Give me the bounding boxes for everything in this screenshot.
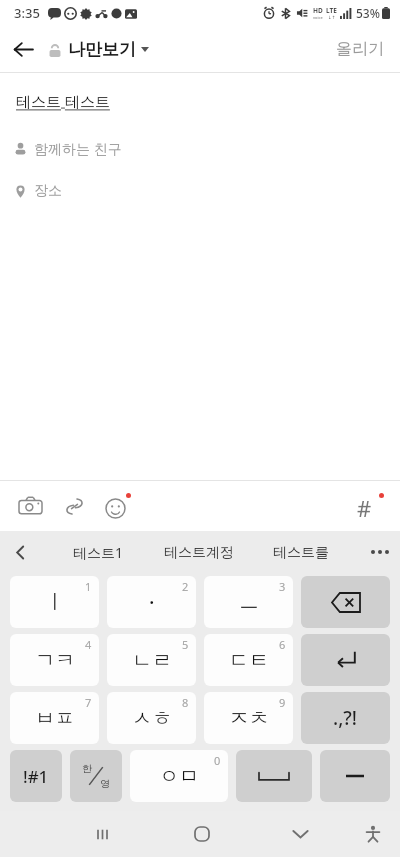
button[interactable]: ㅣ <box>10 576 99 628</box>
button[interactable]: Accessibility <box>350 811 396 857</box>
staticText: 함께하는 친구 <box>34 139 122 158</box>
button[interactable]: Dash <box>320 750 390 802</box>
staticText: 9 <box>279 695 286 710</box>
staticText: voice <box>313 15 323 20</box>
button[interactable]: Attach link <box>52 484 96 528</box>
staticText: ㅇㅁ <box>159 764 199 789</box>
staticText: ㄱㅋ <box>35 648 75 673</box>
button[interactable]: Hashtag <box>348 484 392 528</box>
button[interactable]: ㄱㅋ <box>10 634 99 686</box>
staticText: 0 <box>214 753 221 768</box>
button[interactable]: ㅂㅍ <box>10 692 99 744</box>
staticText: 테스트 테스트 <box>16 91 110 111</box>
button[interactable]: 함께하는 친구 <box>0 133 400 164</box>
button[interactable]: Backspace <box>301 576 390 628</box>
button[interactable]: Camera <box>8 484 52 528</box>
button[interactable]: Emoji <box>96 484 140 528</box>
staticText: 올리기 <box>336 39 384 59</box>
button[interactable]: Home <box>152 811 251 857</box>
staticText: .,?! <box>333 705 358 731</box>
staticText: 1 <box>85 579 92 594</box>
button[interactable]: Recents <box>53 811 152 857</box>
staticText: !#1 <box>23 765 49 788</box>
button[interactable]: 테스트를 <box>267 536 335 570</box>
staticText: 테스트계정 <box>164 544 234 562</box>
staticText: 3 <box>279 579 286 594</box>
button[interactable]: Hide keyboard <box>251 811 350 857</box>
button[interactable]: 장소 <box>0 176 400 206</box>
button[interactable]: 테스트1 <box>67 535 130 570</box>
button[interactable]: Back <box>0 26 46 72</box>
staticText: 6 <box>279 637 286 652</box>
button[interactable]: Enter <box>301 634 390 686</box>
button[interactable]: 나만보기 <box>46 33 151 66</box>
button[interactable]: More options <box>360 532 400 572</box>
staticText: 5 <box>182 637 189 652</box>
button[interactable]: ㅇㅁ <box>130 750 228 802</box>
staticText: 4 <box>85 637 92 652</box>
staticText: ㅈㅊ <box>229 706 269 731</box>
button[interactable]: · <box>107 576 196 628</box>
button[interactable]: Language <box>70 750 122 802</box>
staticText: ㅂㅍ <box>35 706 75 731</box>
button[interactable]: ㅅㅎ <box>107 692 196 744</box>
staticText: ㅡ <box>239 590 259 615</box>
staticText: 나만보기 <box>68 39 136 60</box>
button[interactable]: ㄴㄹ <box>107 634 196 686</box>
staticText: 테스트1 <box>73 543 124 562</box>
button[interactable]: ㅈㅊ <box>204 692 293 744</box>
staticText: 한 <box>82 762 92 775</box>
button[interactable]: Symbols <box>10 750 62 802</box>
staticText: ㄷㅌ <box>229 648 269 673</box>
staticText: 8 <box>182 695 189 710</box>
button[interactable]: Space <box>236 750 312 802</box>
button[interactable]: Previous suggestions <box>0 532 40 572</box>
button[interactable]: Punctuation <box>301 692 390 744</box>
staticText: 2 <box>182 579 189 594</box>
button[interactable]: 테스트계정 <box>158 536 240 570</box>
staticText: LTE <box>326 6 337 15</box>
button[interactable]: ㅡ <box>204 576 293 628</box>
staticText: HD <box>313 6 323 15</box>
staticText: 장소 <box>34 182 62 200</box>
staticText: · <box>149 589 155 616</box>
staticText: ㅅㅎ <box>132 706 172 731</box>
button[interactable]: ㄷㅌ <box>204 634 293 686</box>
staticText: # <box>357 493 372 520</box>
staticText: 53% <box>356 5 380 21</box>
staticText: ↓↑ <box>328 15 336 20</box>
staticText: ㄴㄹ <box>132 648 172 673</box>
staticText: ㅣ <box>45 590 65 615</box>
staticText: 3:35 <box>14 4 40 22</box>
staticText: 7 <box>85 695 92 710</box>
button[interactable]: 올리기 <box>320 29 400 69</box>
staticText: 테스트를 <box>273 544 329 562</box>
staticText: 영 <box>100 777 110 790</box>
